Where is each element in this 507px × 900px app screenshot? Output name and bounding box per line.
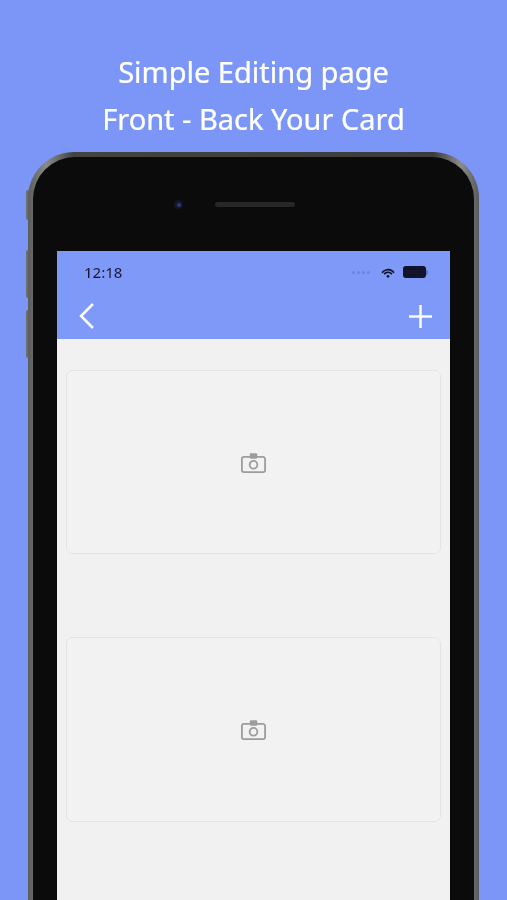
button[interactable]: Add photo (66, 637, 441, 822)
staticText: 12:18 (84, 262, 123, 282)
button[interactable]: Add photo (66, 370, 441, 554)
staticText: Simple Editing page (118, 52, 389, 91)
staticText: Front - Back Your Card (102, 99, 405, 138)
button[interactable]: Back (67, 296, 107, 336)
button[interactable]: Add (400, 296, 440, 336)
